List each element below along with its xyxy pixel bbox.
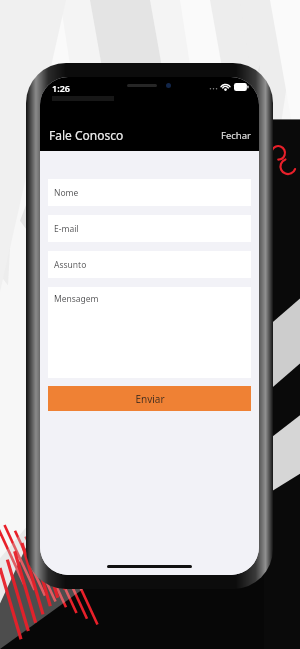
staticText: Enviar: [135, 392, 165, 406]
staticText: Mensagem: [54, 293, 99, 305]
button[interactable]: Enviar: [48, 386, 251, 411]
button[interactable]: Assunto: [48, 251, 251, 278]
staticText: 1:26: [52, 82, 70, 94]
staticText: Fechar: [221, 129, 251, 142]
button[interactable]: Nome: [48, 179, 251, 206]
button[interactable]: Mensagem: [48, 287, 251, 378]
staticText: Nome: [54, 187, 79, 199]
button[interactable]: E-mail: [48, 215, 251, 242]
staticText: Fale Conosco: [49, 127, 124, 143]
staticText: E-mail: [54, 223, 79, 235]
button[interactable]: Fechar: [213, 123, 259, 148]
staticText: Assunto: [54, 259, 87, 271]
